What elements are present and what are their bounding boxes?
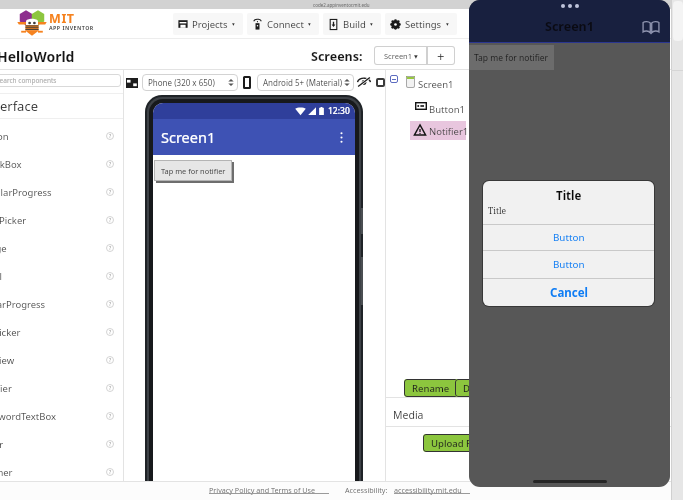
staticText: Phone (320 x 650): [148, 77, 215, 88]
staticText: ?: [109, 357, 112, 364]
button[interactable]: Toggle preview size: [126, 78, 138, 88]
staticText: ▾: [370, 21, 373, 27]
button[interactable]: Notifier: [0, 374, 123, 402]
button[interactable]: Open documentation: [641, 17, 661, 37]
button[interactable]: Image: [0, 234, 123, 262]
staticText: Cancel: [550, 285, 588, 301]
button[interactable]: PasswordTextBox: [0, 402, 123, 430]
staticText: Image: [0, 242, 7, 255]
staticText: Tap me for notifier: [161, 166, 226, 176]
staticText: ▾: [446, 21, 449, 27]
staticText: Accessibility:: [345, 485, 388, 495]
button[interactable]: ListView: [0, 346, 123, 374]
staticText: Title: [488, 205, 507, 217]
staticText: ▾: [232, 21, 235, 27]
button[interactable]: +: [427, 46, 455, 65]
staticText: HelloWorld: [0, 47, 75, 66]
staticText: Delete: [463, 382, 493, 395]
staticText: Settings: [405, 18, 442, 31]
staticText: ListPicker: [0, 326, 21, 339]
button[interactable]: Delete: [455, 379, 501, 397]
staticText: MIT: [49, 10, 75, 27]
staticText: CircularProgress: [0, 186, 52, 199]
button[interactable]: [410, 121, 466, 140]
staticText: Slider: [0, 438, 4, 451]
button[interactable]: Tap me for notifier: [154, 160, 232, 181]
button[interactable]: Settings: [385, 13, 457, 35]
button[interactable]: Show hidden components: [357, 76, 371, 88]
staticText: ?: [109, 133, 112, 140]
staticText: Upload File ...: [431, 437, 492, 450]
staticText: Build: [343, 18, 366, 31]
button[interactable]: Spinner: [0, 458, 123, 486]
staticText: Tap me for notifier: [474, 52, 549, 64]
button[interactable]: LinearProgress: [0, 290, 123, 318]
button[interactable]: Projects: [173, 13, 243, 35]
staticText: User Interface: [0, 97, 38, 115]
button[interactable]: Label: [0, 262, 123, 290]
staticText: Screen1: [161, 127, 216, 147]
button[interactable]: Build: [323, 13, 381, 35]
button[interactable]: Collapse tree: [390, 75, 398, 83]
staticText: Button1: [429, 103, 465, 116]
button[interactable]: Phone (320 x 650): [142, 74, 238, 91]
staticText: ?: [109, 273, 112, 280]
staticText: LinearProgress: [0, 298, 46, 311]
staticText: PasswordTextBox: [0, 410, 56, 423]
button[interactable]: Slider: [0, 430, 123, 458]
button[interactable]: Rename: [404, 379, 458, 397]
button[interactable]: Tap me for notifier: [469, 45, 554, 70]
staticText: Search components: [0, 76, 57, 85]
staticText: Label: [0, 270, 2, 283]
staticText: ?: [109, 245, 112, 252]
staticText: 12:30: [328, 105, 350, 117]
staticText: ?: [109, 329, 112, 336]
button[interactable]: Button: [483, 225, 654, 250]
staticText: ?: [109, 189, 112, 196]
button[interactable]: Cancel: [483, 279, 654, 306]
staticText: Rename: [412, 382, 450, 395]
button[interactable]: CircularProgress: [0, 178, 123, 206]
button[interactable]: Search components: [0, 74, 121, 87]
staticText: ?: [109, 469, 112, 476]
staticText: ListView: [0, 354, 15, 367]
staticText: ?: [109, 441, 112, 448]
button[interactable]: Android 5+ (Material): [257, 74, 354, 91]
staticText: Screen1: [418, 78, 454, 91]
staticText: ?: [109, 161, 112, 168]
staticText: Button: [553, 258, 585, 271]
staticText: code2.appinventor.mit.edu: [313, 2, 370, 8]
button[interactable]: CheckBox: [0, 150, 123, 178]
staticText: Screen1 ▾: [384, 51, 418, 61]
staticText: Screen1: [545, 18, 594, 35]
staticText: Screens:: [311, 48, 363, 65]
staticText: Android 5+ (Material): [263, 77, 343, 88]
staticText: ?: [109, 413, 112, 420]
staticText: CheckBox: [0, 158, 22, 171]
staticText: Button: [0, 130, 9, 143]
button[interactable]: More options: [334, 130, 348, 144]
button[interactable]: Connect: [247, 13, 319, 35]
staticText: Notifier: [0, 382, 12, 395]
staticText: ?: [109, 301, 112, 308]
staticText: Media: [393, 408, 424, 422]
staticText: Notifier1: [429, 125, 469, 138]
staticText: ?: [109, 217, 112, 224]
staticText: Projects: [192, 18, 228, 31]
staticText: Spinner: [0, 466, 13, 479]
staticText: Button: [553, 231, 585, 244]
button[interactable]: ListPicker: [0, 318, 123, 346]
staticText: Privacy Policy and Terms of Use: [209, 485, 315, 495]
staticText: ▾: [308, 21, 311, 27]
button[interactable]: Button: [0, 122, 123, 150]
button[interactable]: Button: [483, 251, 654, 278]
button[interactable]: Phone form factor: [243, 76, 251, 89]
staticText: Connect: [267, 18, 304, 31]
staticText: DatePicker: [0, 214, 27, 227]
button[interactable]: Upload File ...: [423, 434, 500, 452]
staticText: ?: [109, 385, 112, 392]
button[interactable]: DatePicker: [0, 206, 123, 234]
button[interactable]: Screen1 ▾: [374, 46, 427, 65]
staticText: accessibility.mit.edu: [394, 485, 462, 495]
button[interactable]: Checkbox: [376, 78, 385, 87]
